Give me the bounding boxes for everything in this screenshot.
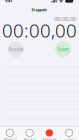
staticText: 00:00,00	[2, 17, 77, 43]
staticText: Start	[57, 46, 69, 53]
staticText: Weltzeit	[3, 137, 16, 140]
button[interactable]: Start	[55, 41, 71, 57]
button[interactable]: Weltzeit	[0, 127, 20, 140]
staticText: 9:41	[5, 0, 12, 3]
staticText: Wecker	[24, 137, 36, 140]
button[interactable]: Timer	[59, 127, 79, 140]
button[interactable]: Wecker	[20, 127, 40, 140]
staticText: Timer	[65, 137, 74, 140]
staticText: Stoppuhr	[31, 7, 47, 12]
staticText: Stoppuhr	[42, 137, 56, 140]
button[interactable]: Runde	[8, 41, 24, 57]
staticText: 00:00,00	[54, 15, 76, 23]
button[interactable]: Stoppuhr	[39, 127, 59, 140]
staticText: Runde	[8, 46, 23, 53]
